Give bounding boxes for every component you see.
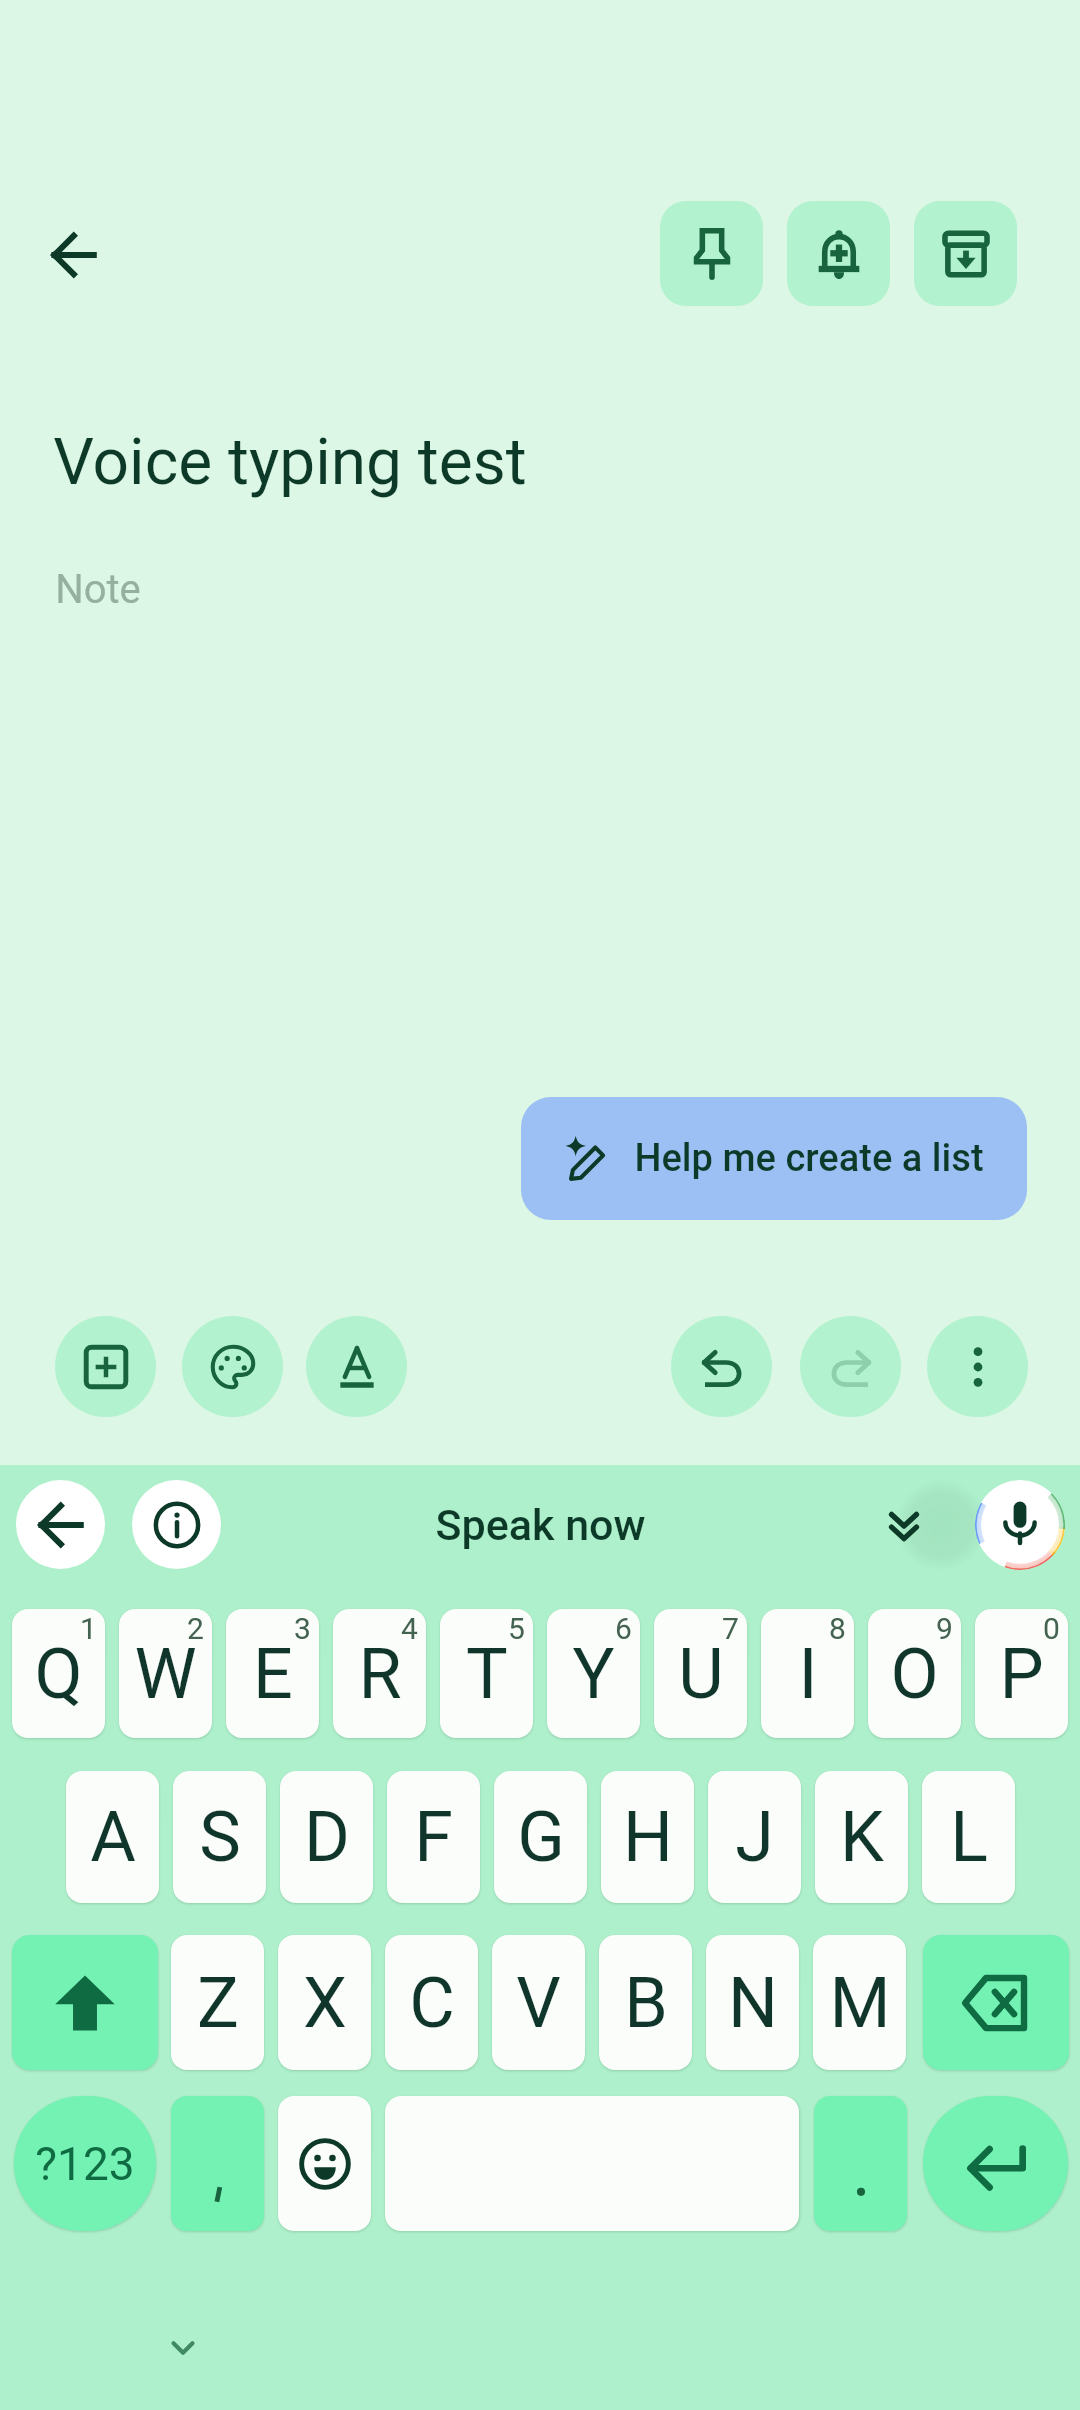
button[interactable]: Collapse voice typing: [862, 1483, 946, 1567]
button[interactable]: Add: [55, 1316, 156, 1417]
button[interactable]: Redo: [800, 1316, 901, 1417]
button[interactable]: N: [706, 1935, 799, 2070]
staticText: Help me create a list: [634, 1136, 984, 1181]
staticText: C: [409, 1962, 455, 2044]
button[interactable]: Pin: [660, 201, 763, 306]
button[interactable]: Backspace: [923, 1935, 1069, 2070]
staticText: Note: [55, 566, 141, 613]
staticText: 6: [615, 1611, 632, 1646]
staticText: 4: [401, 1611, 418, 1646]
button[interactable]: V: [492, 1935, 585, 2070]
button[interactable]: Period: [814, 2096, 907, 2231]
staticText: 3: [294, 1611, 311, 1646]
staticText: 1: [80, 1611, 97, 1646]
staticText: K: [840, 1796, 884, 1878]
staticText: Q: [34, 1633, 83, 1715]
staticText: 5: [508, 1611, 525, 1646]
staticText: 9: [936, 1611, 953, 1646]
staticText: 8: [829, 1611, 846, 1646]
staticText: T: [466, 1633, 508, 1715]
staticText: 2: [187, 1611, 204, 1646]
button[interactable]: Back: [16, 1480, 105, 1569]
button[interactable]: Shift: [12, 1935, 158, 2070]
staticText: P: [999, 1633, 1044, 1715]
button[interactable]: Formatting options: [306, 1316, 407, 1417]
staticText: 0: [1043, 1611, 1060, 1646]
button[interactable]: P: [975, 1609, 1068, 1738]
staticText: L: [950, 1796, 988, 1878]
button[interactable]: M: [813, 1935, 906, 2070]
button[interactable]: Undo: [671, 1316, 772, 1417]
button[interactable]: Q: [12, 1609, 105, 1738]
staticText: G: [517, 1796, 565, 1878]
button[interactable]: Hide keyboard: [145, 2310, 221, 2386]
button[interactable]: L: [922, 1771, 1015, 1903]
staticText: A: [90, 1796, 136, 1878]
staticText: J: [735, 1796, 774, 1878]
staticText: U: [678, 1633, 724, 1715]
staticText: V: [516, 1962, 561, 2044]
button[interactable]: U: [654, 1609, 747, 1738]
button[interactable]: Back: [29, 210, 119, 300]
button[interactable]: More options: [927, 1316, 1028, 1417]
button[interactable]: Space: [385, 2096, 799, 2231]
button[interactable]: Info: [132, 1480, 221, 1569]
button[interactable]: J: [708, 1771, 801, 1903]
button[interactable]: E: [226, 1609, 319, 1738]
button[interactable]: F: [387, 1771, 480, 1903]
button[interactable]: B: [599, 1935, 692, 2070]
button[interactable]: ?123: [14, 2096, 156, 2231]
staticText: 7: [722, 1611, 739, 1646]
button[interactable]: Y: [547, 1609, 640, 1738]
staticText: I: [798, 1633, 818, 1715]
button[interactable]: O: [868, 1609, 961, 1738]
staticText: N: [728, 1962, 778, 2044]
button[interactable]: A: [66, 1771, 159, 1903]
staticText: B: [624, 1962, 668, 2044]
staticText: H: [623, 1796, 673, 1878]
button[interactable]: Comma: [171, 2096, 264, 2231]
staticText: M: [829, 1962, 891, 2044]
staticText: Speak now: [435, 1500, 646, 1550]
staticText: Y: [572, 1633, 615, 1715]
button[interactable]: Help me create a list: [521, 1097, 1027, 1220]
staticText: W: [134, 1633, 197, 1715]
button[interactable]: Enter: [923, 2096, 1068, 2231]
button[interactable]: G: [494, 1771, 587, 1903]
button[interactable]: Emoji: [278, 2096, 371, 2231]
staticText: O: [890, 1633, 939, 1715]
button[interactable]: K: [815, 1771, 908, 1903]
staticText: X: [303, 1962, 347, 2044]
button[interactable]: S: [173, 1771, 266, 1903]
staticText: S: [199, 1796, 241, 1878]
button[interactable]: I: [761, 1609, 854, 1738]
button[interactable]: Microphone: [975, 1480, 1065, 1570]
button[interactable]: Archive: [914, 201, 1017, 306]
staticText: D: [304, 1796, 350, 1878]
button[interactable]: W: [119, 1609, 212, 1738]
button[interactable]: T: [440, 1609, 533, 1738]
button[interactable]: Background options: [182, 1316, 283, 1417]
button[interactable]: R: [333, 1609, 426, 1738]
staticText: Z: [197, 1962, 239, 2044]
staticText: ?123: [35, 2137, 135, 2191]
button[interactable]: H: [601, 1771, 694, 1903]
staticText: E: [253, 1633, 293, 1715]
button[interactable]: Z: [171, 1935, 264, 2070]
staticText: F: [414, 1796, 453, 1878]
button[interactable]: D: [280, 1771, 373, 1903]
button[interactable]: Remind me: [787, 201, 890, 306]
staticText: Voice typing test: [53, 425, 527, 500]
staticText: R: [358, 1633, 402, 1715]
button[interactable]: C: [385, 1935, 478, 2070]
button[interactable]: X: [278, 1935, 371, 2070]
